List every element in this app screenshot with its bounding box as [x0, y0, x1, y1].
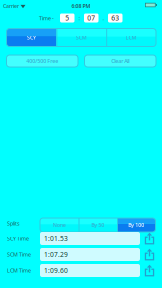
staticText: SCM: [76, 34, 87, 41]
staticText: 1:09.60: [44, 266, 68, 275]
staticText: 6:08 PM: [71, 2, 90, 10]
staticText: SCY: [27, 34, 36, 41]
button[interactable]: By 50: [78, 218, 117, 232]
staticText: 5: [65, 14, 69, 22]
staticText: .: [102, 15, 103, 22]
button[interactable]: Share: [144, 232, 155, 245]
button[interactable]: 400/500 Free: [6, 55, 78, 67]
staticText: LCM: [126, 34, 137, 41]
button[interactable]: SCY: [6, 28, 56, 46]
staticText: By 50: [91, 221, 104, 229]
staticText: Splits: [7, 220, 20, 227]
staticText: 07: [87, 14, 95, 22]
staticText: :: [78, 15, 79, 22]
staticText: Carrier: [3, 2, 19, 10]
button[interactable]: Share: [144, 264, 155, 277]
staticText: None: [53, 221, 66, 229]
button[interactable]: LCM: [106, 28, 156, 46]
button[interactable]: Clear All: [84, 55, 156, 67]
staticText: 400/500 Free: [26, 57, 58, 65]
staticText: 1:07.29: [44, 250, 68, 259]
staticText: Clear All: [111, 57, 129, 65]
staticText: Time -: [39, 15, 54, 22]
button[interactable]: By 100: [117, 218, 155, 232]
button[interactable]: Share: [144, 248, 155, 261]
button[interactable]: SCM: [56, 28, 106, 46]
button[interactable]: None: [40, 218, 78, 232]
staticText: 1:01.53: [44, 234, 68, 243]
staticText: 63: [111, 14, 119, 22]
staticText: SCM Time: [7, 251, 31, 258]
staticText: LCM Time: [7, 267, 31, 274]
staticText: By 100: [128, 221, 144, 229]
staticText: SCY Time: [7, 235, 29, 242]
